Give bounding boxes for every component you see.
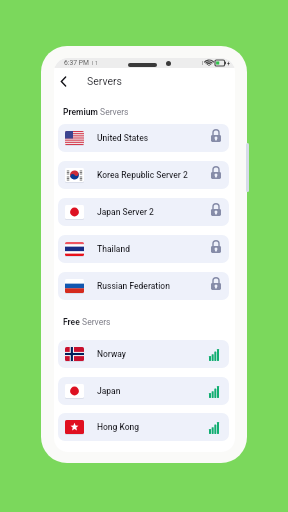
button[interactable]: Back (54, 72, 73, 91)
staticText: Hong Kong (97, 422, 209, 432)
staticText: Servers (98, 107, 129, 117)
staticText: Norway (97, 349, 209, 359)
button[interactable]: Thailand (58, 235, 229, 263)
staticText: Korea Republic Server 2 (97, 170, 211, 180)
button[interactable]: Hong Kong (58, 413, 229, 441)
button[interactable]: Korea Republic Server 2 (58, 161, 229, 189)
button[interactable]: Russian Federation (58, 272, 229, 300)
button[interactable]: United States (58, 124, 229, 152)
button[interactable]: Servers (82, 72, 128, 89)
staticText: Servers (80, 317, 111, 327)
button[interactable]: Norway (58, 340, 229, 368)
button[interactable]: Japan Server 2 (58, 198, 229, 226)
staticText: 1 (95, 60, 98, 66)
staticText: Thailand (97, 244, 211, 254)
button[interactable]: Japan (58, 377, 229, 405)
staticText: Servers (87, 75, 123, 87)
staticText: Japan (97, 386, 209, 396)
staticText: 6:37 PM (64, 59, 90, 67)
staticText: Japan Server 2 (97, 207, 211, 217)
staticText: United States (97, 133, 211, 143)
staticText: Premium (63, 107, 98, 117)
staticText: Free (63, 317, 80, 327)
staticText: Russian Federation (97, 281, 211, 291)
